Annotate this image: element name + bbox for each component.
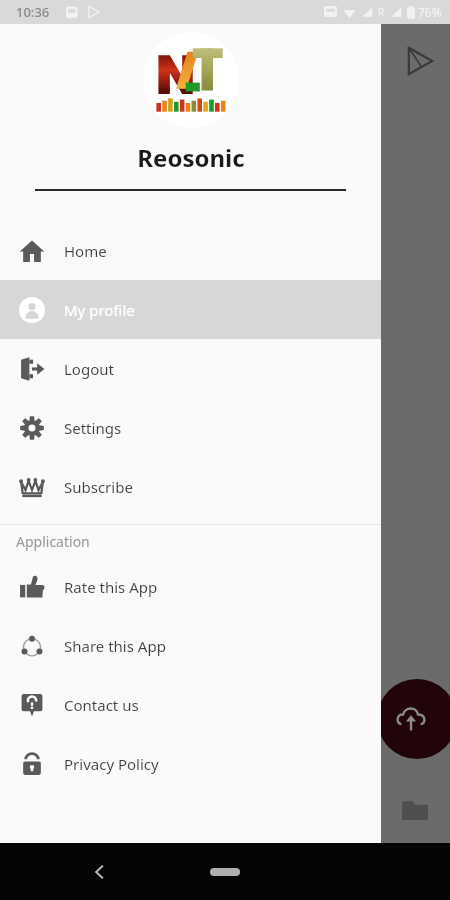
staticText: Privacy Policy [64,754,159,774]
staticText: Contact us [64,695,139,715]
staticText: My profile [64,300,135,320]
button[interactable]: Privacy Policy [0,734,381,793]
button[interactable]: Subscribe [0,457,381,516]
staticText: 76% [418,4,442,20]
staticText: Application [16,532,90,551]
button[interactable]: Rate this App [0,557,381,616]
staticText: Home [64,241,107,261]
staticText: Settings [64,418,122,438]
staticText: Rate this App [64,577,158,597]
button[interactable]: Settings [0,398,381,457]
button[interactable]: Logout [0,339,381,398]
button[interactable]: Share this App [0,616,381,675]
button[interactable]: Upload [377,679,450,759]
staticText: Logout [64,359,114,379]
staticText: Share this App [64,636,166,656]
staticText: 10:36 [16,3,50,21]
button[interactable]: Home [199,859,251,885]
button[interactable]: Home [0,221,381,280]
button[interactable]: My profile [0,280,381,339]
staticText: R [378,5,385,19]
staticText: Reosonic [137,141,245,174]
staticText: Subscribe [64,477,133,497]
button[interactable]: Contact us [0,675,381,734]
button[interactable]: Back [78,850,122,894]
